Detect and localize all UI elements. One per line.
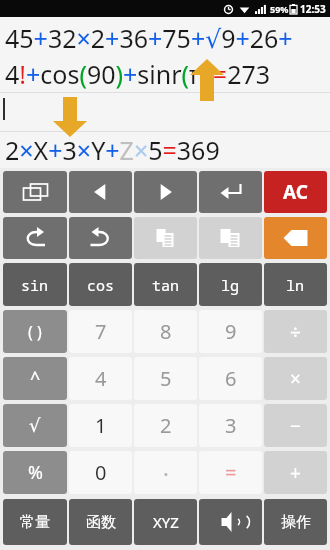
staticText: + bbox=[290, 460, 301, 486]
button[interactable]: XYZ bbox=[134, 499, 197, 545]
staticText: 2×X+3×Y+Z×5=369 bbox=[5, 133, 220, 167]
staticText: 函数 bbox=[86, 513, 116, 532]
staticText: 4 bbox=[95, 365, 107, 392]
staticText: 12:53 bbox=[300, 2, 326, 16]
staticText: 59% bbox=[270, 3, 289, 15]
button[interactable]: 5 bbox=[134, 357, 197, 400]
staticText: ln bbox=[286, 275, 305, 295]
staticText: × bbox=[290, 366, 301, 392]
button[interactable]: ( ) bbox=[3, 310, 67, 353]
staticText: · bbox=[163, 458, 169, 488]
staticText: 2 bbox=[160, 412, 172, 439]
button[interactable]: 9 bbox=[199, 310, 262, 353]
staticText: 8 bbox=[160, 318, 172, 345]
button[interactable]: 7 bbox=[69, 310, 132, 353]
button[interactable]: lg bbox=[199, 263, 262, 306]
button[interactable]: = bbox=[199, 451, 262, 494]
button[interactable]: Copy bbox=[134, 217, 197, 259]
staticText: √ bbox=[29, 415, 41, 436]
staticText: ÷ bbox=[290, 319, 301, 345]
button[interactable]: 3 bbox=[199, 404, 262, 447]
button[interactable]: cos bbox=[69, 263, 132, 306]
staticText: = bbox=[225, 459, 237, 486]
staticText: XYZ bbox=[153, 512, 179, 532]
staticText: 45+32×2+36+75+√9+26+ bbox=[5, 21, 293, 55]
staticText: 4!+cos(90)+sinr(π)=273 bbox=[5, 57, 271, 91]
button[interactable]: Redo bbox=[69, 217, 132, 259]
button[interactable]: sin bbox=[3, 263, 67, 306]
button[interactable]: Windows bbox=[3, 171, 67, 213]
button[interactable]: % bbox=[3, 451, 67, 494]
staticText: % bbox=[28, 460, 43, 485]
button[interactable]: 函数 bbox=[69, 499, 132, 545]
button[interactable]: Backspace bbox=[264, 217, 327, 259]
staticText: ( ) bbox=[28, 321, 42, 343]
staticText: 常量 bbox=[20, 513, 50, 532]
button[interactable]: + bbox=[264, 451, 327, 494]
button[interactable]: Move left bbox=[69, 171, 132, 213]
button[interactable]: Paste bbox=[199, 217, 262, 259]
button[interactable]: − bbox=[264, 404, 327, 447]
button[interactable]: 6 bbox=[199, 357, 262, 400]
button[interactable]: ln bbox=[264, 263, 327, 306]
button[interactable]: Undo bbox=[3, 217, 67, 259]
button[interactable]: 8 bbox=[134, 310, 197, 353]
button[interactable]: Sound bbox=[199, 499, 262, 545]
button[interactable]: 常量 bbox=[3, 499, 67, 545]
button[interactable]: Enter bbox=[199, 171, 262, 213]
staticText: ^ bbox=[30, 366, 41, 391]
staticText: 9 bbox=[225, 318, 237, 345]
button[interactable]: √ bbox=[3, 404, 67, 447]
staticText: lg bbox=[221, 275, 240, 295]
button[interactable]: 0 bbox=[69, 451, 132, 494]
staticText: 操作 bbox=[281, 513, 311, 532]
staticText: cos bbox=[87, 275, 115, 295]
staticText: 7 bbox=[95, 318, 107, 345]
button[interactable]: 1 bbox=[69, 404, 132, 447]
button[interactable]: ^ bbox=[3, 357, 67, 400]
staticText: 1 bbox=[95, 412, 107, 439]
button[interactable]: 4 bbox=[69, 357, 132, 400]
staticText: sin bbox=[21, 275, 49, 295]
staticText: 6 bbox=[225, 365, 237, 392]
staticText: 0 bbox=[95, 459, 107, 486]
staticText: 3 bbox=[225, 412, 237, 439]
button[interactable]: 操作 bbox=[264, 499, 327, 545]
staticText: tan bbox=[152, 275, 180, 295]
button[interactable]: tan bbox=[134, 263, 197, 306]
button[interactable]: AC bbox=[264, 171, 327, 213]
button[interactable]: × bbox=[264, 357, 327, 400]
staticText: 5 bbox=[160, 365, 172, 392]
staticText: − bbox=[290, 413, 301, 439]
button[interactable]: Move right bbox=[134, 171, 197, 213]
button[interactable]: ÷ bbox=[264, 310, 327, 353]
staticText: AC bbox=[283, 179, 308, 205]
button[interactable]: 2 bbox=[134, 404, 197, 447]
button[interactable]: · bbox=[134, 451, 197, 494]
